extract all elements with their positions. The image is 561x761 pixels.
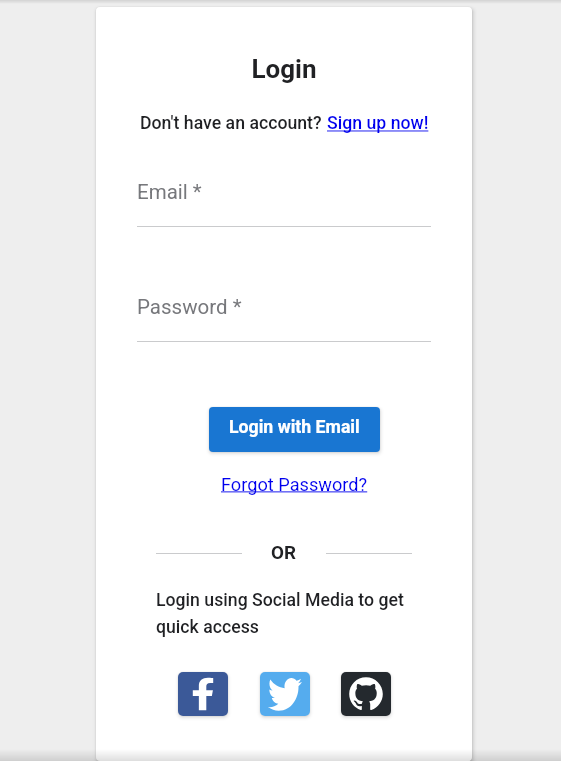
staticText: Password *: [137, 295, 242, 319]
staticText: Login: [96, 54, 472, 84]
staticText: OR: [271, 542, 297, 564]
button[interactable]: Login with Email: [209, 407, 380, 452]
staticText: Email *: [137, 180, 202, 204]
staticText: Forgot Password?: [221, 474, 368, 495]
button[interactable]: Twitter: [260, 672, 310, 716]
button[interactable]: Sign up now!: [327, 113, 429, 134]
button[interactable]: GitHub: [341, 672, 391, 716]
staticText: Login with Email: [229, 417, 360, 438]
button[interactable]: Facebook: [178, 672, 228, 716]
staticText: Login using Social Media to get quick ac…: [156, 590, 412, 637]
button[interactable]: Forgot Password?: [221, 474, 368, 495]
staticText: Sign up now!: [327, 113, 429, 134]
staticText: Don't have an account?: [140, 113, 327, 134]
